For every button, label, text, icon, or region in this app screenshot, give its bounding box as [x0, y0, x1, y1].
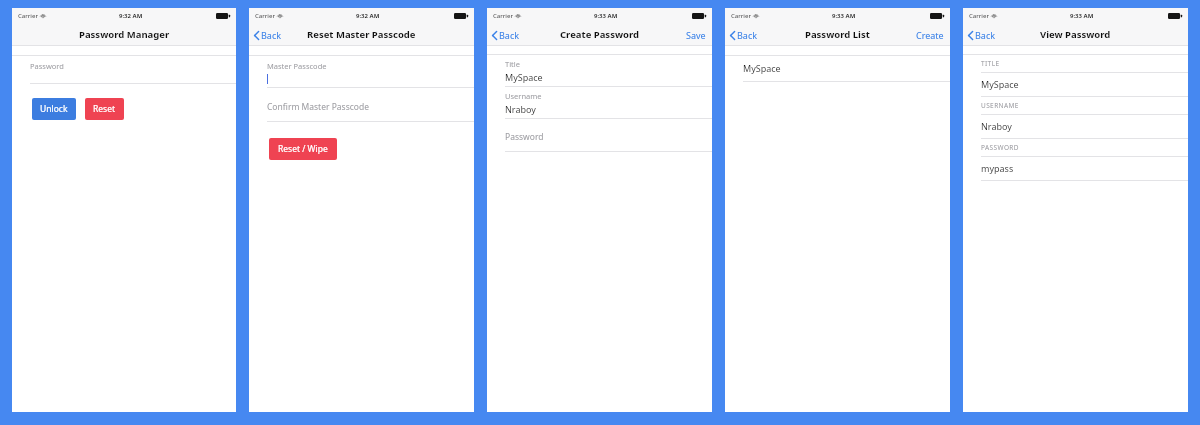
- button[interactable]: Reset: [85, 98, 124, 120]
- staticText: Carrier: [969, 12, 989, 20]
- staticText: Password List: [805, 28, 870, 41]
- staticText: Unlock: [40, 103, 68, 115]
- button[interactable]: Nraboy: [963, 115, 1188, 138]
- button[interactable]: Password: [12, 56, 236, 83]
- button[interactable]: Back: [725, 26, 764, 44]
- button[interactable]: Password: [487, 131, 712, 143]
- staticText: 9:33 AM: [832, 12, 856, 20]
- staticText: View Password: [1040, 28, 1111, 41]
- staticText: Password Manager: [79, 28, 170, 41]
- staticText: Password: [505, 131, 544, 143]
- staticText: Nraboy: [981, 120, 1012, 132]
- button[interactable]: Reset / Wipe: [269, 138, 337, 160]
- staticText: 9:32 AM: [356, 12, 380, 20]
- staticText: Confirm Master Passcode: [267, 101, 369, 113]
- staticText: Back: [737, 29, 758, 41]
- staticText: Reset: [93, 103, 116, 115]
- staticText: PASSWORD: [981, 143, 1019, 152]
- staticText: Password: [30, 61, 64, 71]
- staticText: Create Password: [560, 28, 640, 41]
- staticText: 9:32 AM: [119, 12, 143, 20]
- button[interactable]: Confirm Master Passcode: [249, 101, 474, 113]
- button[interactable]: Back: [487, 26, 526, 44]
- button[interactable]: Username: [487, 87, 712, 118]
- staticText: Create: [916, 29, 944, 41]
- button[interactable]: Back: [249, 26, 288, 44]
- staticText: USERNAME: [981, 101, 1019, 110]
- staticText: 9:33 AM: [594, 12, 618, 20]
- staticText: Reset / Wipe: [278, 143, 328, 155]
- staticText: Back: [261, 29, 282, 41]
- staticText: Back: [499, 29, 520, 41]
- staticText: Title: [505, 59, 520, 69]
- staticText: Reset Master Passcode: [307, 28, 416, 41]
- staticText: 9:33 AM: [1070, 12, 1094, 20]
- staticText: Master Passcode: [267, 61, 327, 71]
- staticText: Carrier: [493, 12, 513, 20]
- button[interactable]: Unlock: [32, 98, 76, 120]
- staticText: Carrier: [731, 12, 751, 20]
- staticText: TITLE: [981, 59, 1000, 68]
- staticText: Carrier: [255, 12, 275, 20]
- staticText: MySpace: [505, 71, 543, 83]
- staticText: MySpace: [981, 78, 1019, 90]
- button[interactable]: mypass: [963, 157, 1188, 180]
- staticText: Nraboy: [505, 103, 536, 115]
- button[interactable]: Create: [910, 26, 950, 44]
- staticText: Save: [686, 29, 706, 41]
- staticText: Username: [505, 91, 542, 101]
- staticText: Carrier: [18, 12, 38, 20]
- button[interactable]: MySpace: [725, 56, 950, 81]
- button[interactable]: Title: [487, 55, 712, 86]
- button[interactable]: Back: [963, 26, 1002, 44]
- button[interactable]: MySpace: [963, 73, 1188, 96]
- staticText: mypass: [981, 162, 1014, 174]
- button[interactable]: Save: [680, 26, 712, 44]
- staticText: Back: [975, 29, 996, 41]
- button[interactable]: Master Passcode: [249, 56, 474, 87]
- staticText: MySpace: [743, 62, 781, 74]
